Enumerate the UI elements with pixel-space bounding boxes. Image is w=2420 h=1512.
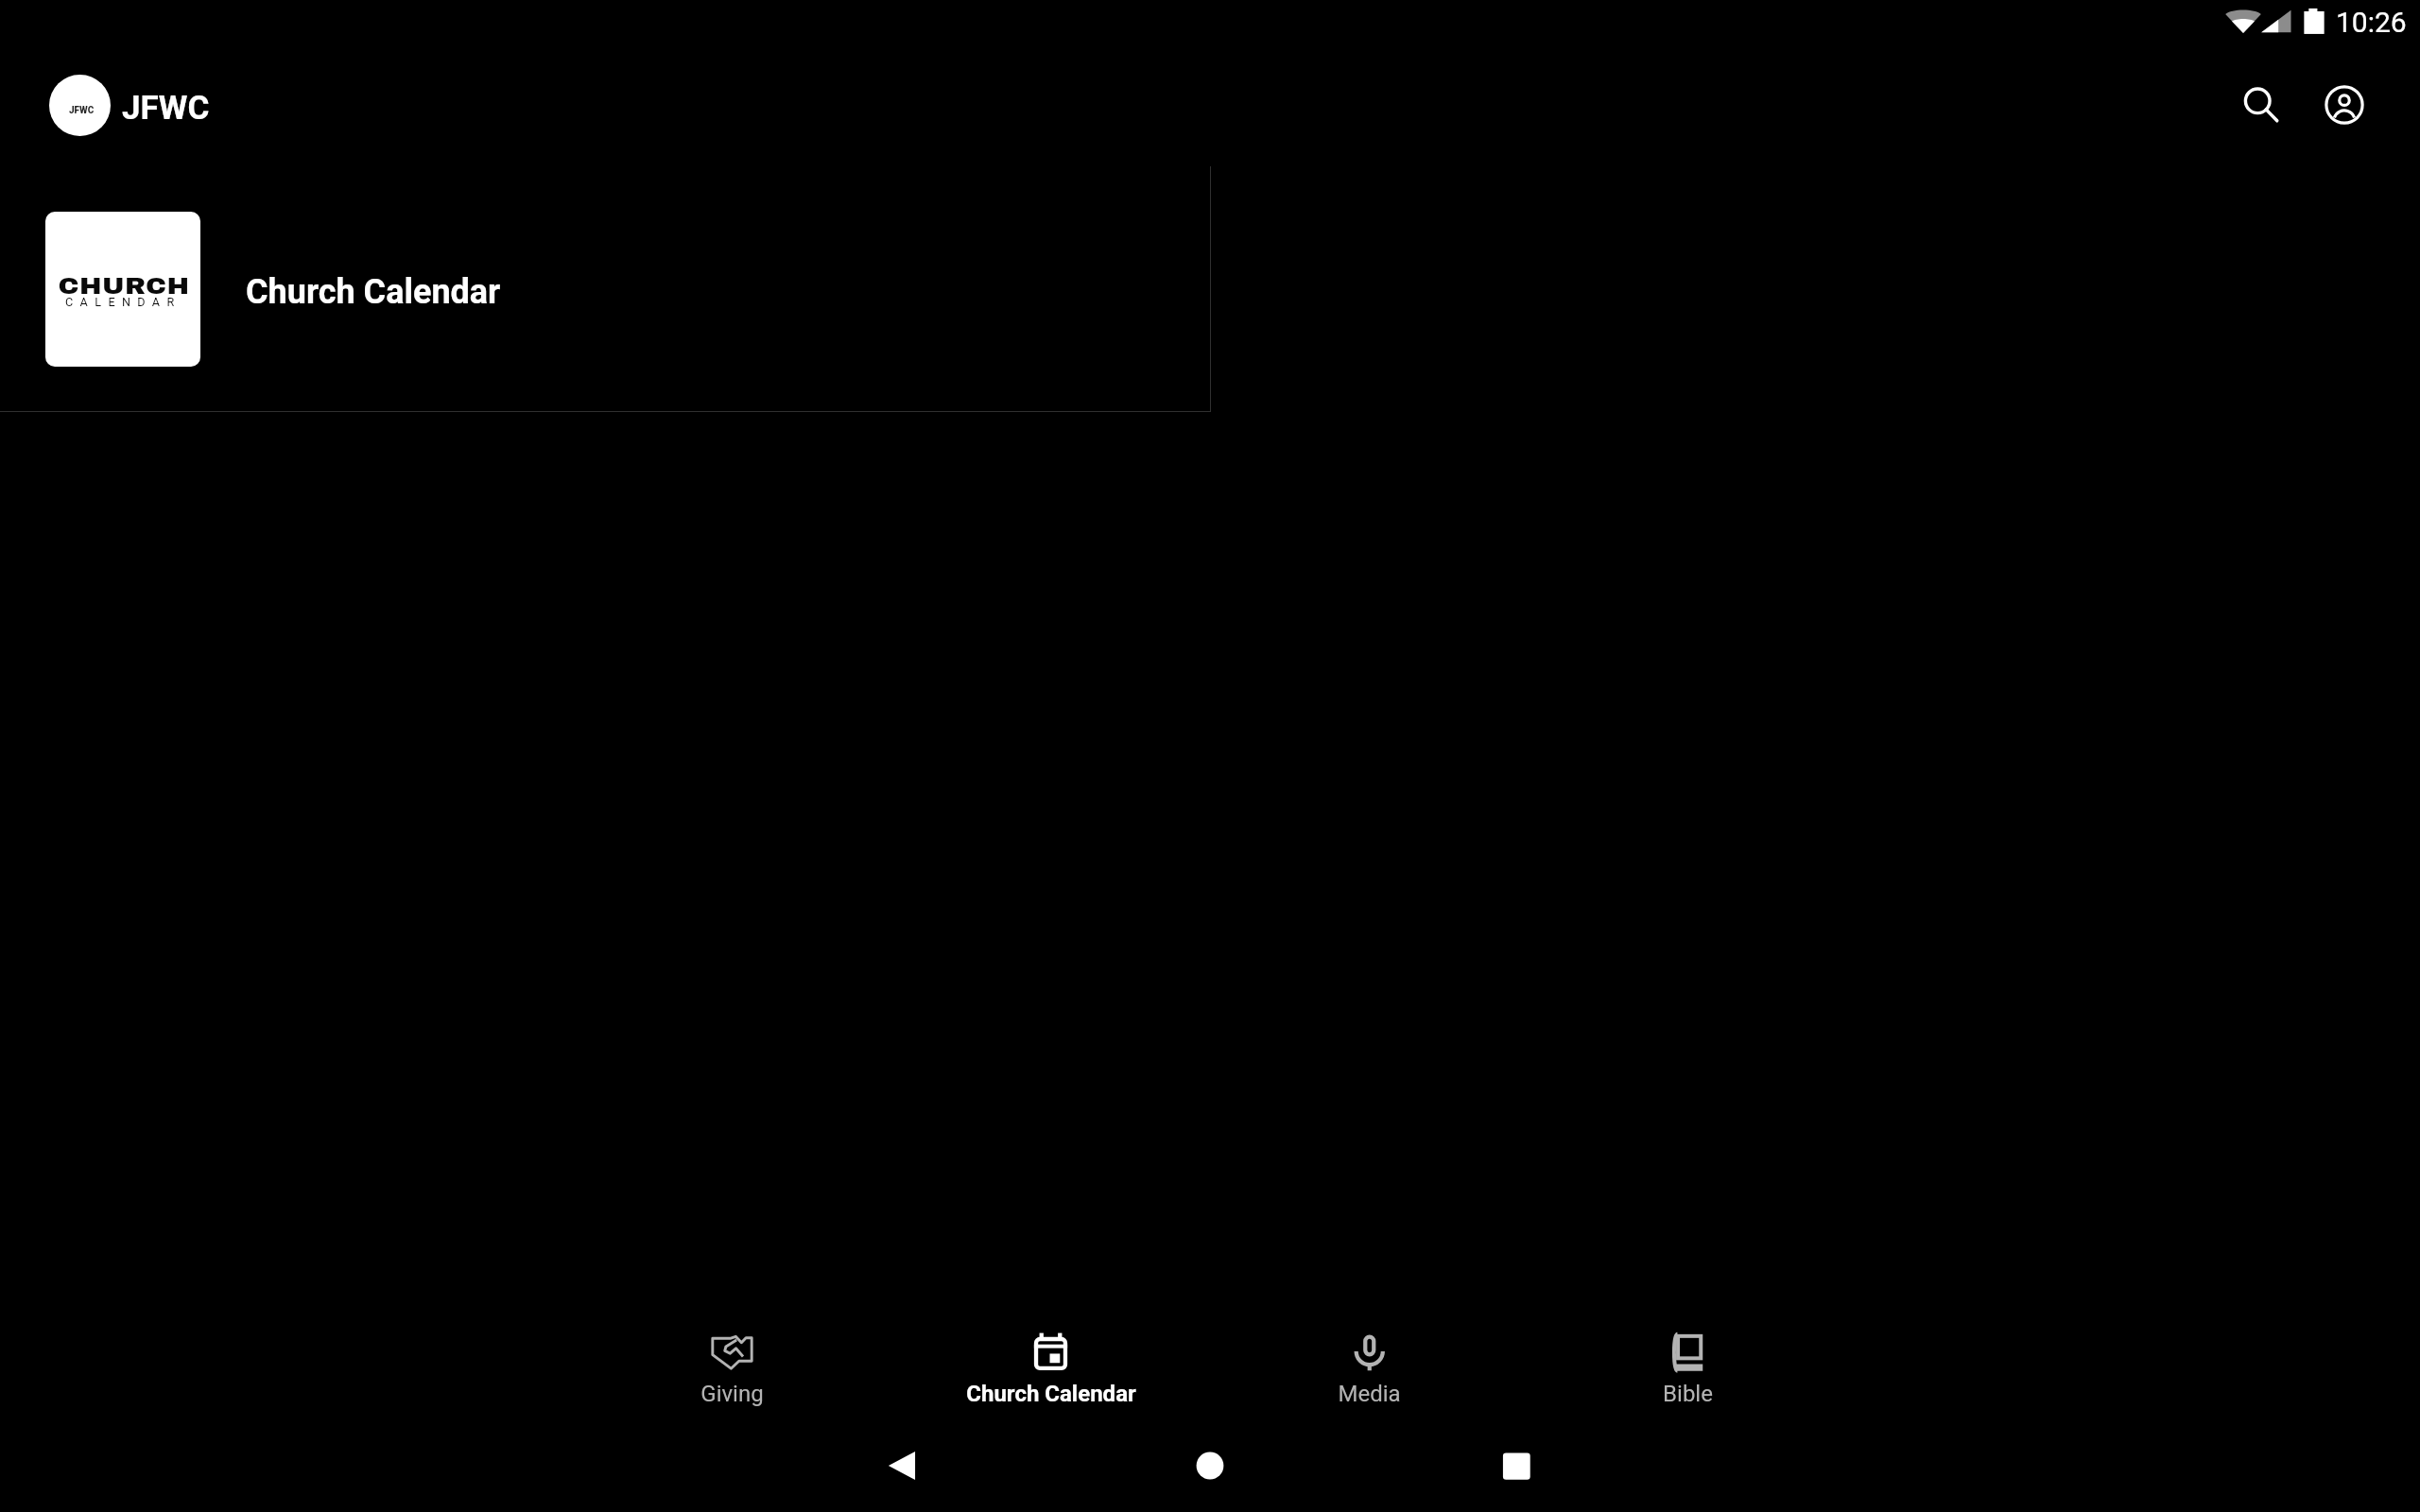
button[interactable]: JFWC <box>49 75 210 136</box>
button[interactable]: Account <box>2303 63 2386 146</box>
staticText: Media <box>1338 1381 1401 1407</box>
staticText: JFWC <box>69 105 95 116</box>
button[interactable]: Recents <box>1490 1439 1543 1492</box>
staticText: Giving <box>700 1381 764 1407</box>
button[interactable]: CHURCH <box>0 166 1211 412</box>
button[interactable]: Church Calendar <box>891 1321 1210 1416</box>
staticText: Bible <box>1663 1381 1713 1407</box>
button[interactable]: Giving <box>573 1321 891 1416</box>
staticText: CALENDAR <box>65 295 181 309</box>
staticText: Church Calendar <box>246 272 501 312</box>
staticText: JFWC <box>122 89 210 128</box>
button[interactable]: Home <box>1184 1439 1236 1492</box>
staticText: 10:26 <box>2336 6 2407 39</box>
button[interactable]: Media <box>1210 1321 1529 1416</box>
staticText: Church Calendar <box>966 1381 1136 1407</box>
button[interactable]: Bible <box>1529 1321 1847 1416</box>
staticText: CHURCH <box>58 274 190 299</box>
button[interactable]: Search <box>2220 63 2303 146</box>
button[interactable]: Back <box>874 1439 927 1492</box>
